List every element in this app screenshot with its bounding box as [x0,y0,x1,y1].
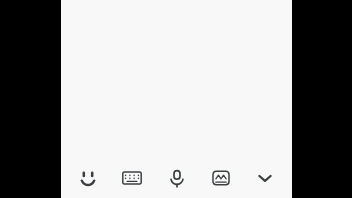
button[interactable]: Handwriting [204,161,238,195]
button[interactable]: Voice input [160,161,194,195]
button[interactable]: Emoji [71,161,105,195]
button[interactable]: Collapse [248,161,282,195]
button[interactable]: Keyboard [115,161,149,195]
